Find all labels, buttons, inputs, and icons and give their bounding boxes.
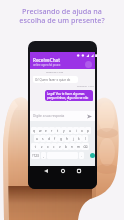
button[interactable]: f <box>52 135 58 142</box>
button[interactable]: a <box>34 135 40 142</box>
button[interactable]: , <box>41 152 46 159</box>
staticText: e <box>45 129 47 133</box>
button[interactable]: ?123 <box>31 152 40 159</box>
staticText: d <box>48 137 50 141</box>
staticText: s <box>42 137 44 141</box>
button[interactable]: o <box>79 127 85 134</box>
staticText: ⇧ <box>34 145 37 149</box>
button[interactable]: u <box>67 127 73 134</box>
button[interactable]: Enter <box>90 153 95 158</box>
staticText: v <box>59 145 61 149</box>
staticText: g <box>60 137 62 141</box>
staticText: k <box>78 137 80 141</box>
button[interactable]: q <box>31 127 37 134</box>
staticText: c <box>53 145 55 149</box>
staticText: z <box>41 145 43 149</box>
button[interactable]: m <box>75 143 81 150</box>
button[interactable]: b <box>63 143 69 150</box>
staticText: x <box>47 145 49 149</box>
button[interactable]: e <box>43 127 49 134</box>
staticText: q <box>33 129 35 133</box>
button[interactable]: h <box>64 135 70 142</box>
button[interactable]: Profile <box>85 61 92 68</box>
button[interactable]: Home <box>58 166 68 176</box>
button[interactable]: j <box>70 135 76 142</box>
staticText: p <box>87 129 89 133</box>
button[interactable]: Recents <box>74 166 84 176</box>
button[interactable]: c <box>51 143 57 150</box>
button[interactable]: ⌫ <box>81 143 89 150</box>
button[interactable]: k <box>76 135 82 142</box>
staticText: ontem às 14:20 <box>46 70 64 73</box>
staticText: Digite a sua resposta <box>33 114 65 118</box>
staticText: ReceiveChat <box>33 57 60 63</box>
staticText: n <box>71 145 73 149</box>
button[interactable]: r <box>49 127 55 134</box>
staticText: Legal! Vou te fazer algumas perguntinhas… <box>47 92 93 101</box>
staticText: m <box>77 145 80 149</box>
staticText: w <box>39 129 42 133</box>
button[interactable]: z <box>39 143 45 150</box>
staticText: ⌫ <box>83 145 88 149</box>
button[interactable]: Oi! Quero fazer o quizz do presente <box>33 76 78 83</box>
staticText: b <box>65 145 67 149</box>
staticText: ?123 <box>32 154 39 158</box>
button[interactable]: n <box>69 143 75 150</box>
button[interactable]: Legal! Vou te fazer algumas perguntinhas… <box>45 90 93 101</box>
staticText: Precisando de ajuda na escolha de um pre… <box>19 6 105 25</box>
button[interactable]: g <box>58 135 64 142</box>
button[interactable]: x <box>45 143 51 150</box>
button[interactable]: t <box>55 127 61 134</box>
staticText: h <box>66 137 68 141</box>
staticText: . <box>81 154 82 158</box>
staticText: Oi! Quero fazer o quizz do presente <box>35 78 78 83</box>
staticText: i <box>76 129 77 133</box>
button[interactable]: Back <box>41 166 51 176</box>
button[interactable]: s <box>40 135 46 142</box>
button[interactable]: i <box>73 127 79 134</box>
button[interactable]: y <box>61 127 67 134</box>
button[interactable]: . <box>79 152 84 159</box>
button[interactable]: Send <box>87 114 92 119</box>
button[interactable]: w <box>37 127 43 134</box>
staticText: l <box>85 137 86 141</box>
staticText: online agora há pouco <box>33 63 61 67</box>
button[interactable]: ⇧ <box>31 143 39 150</box>
staticText: r <box>51 129 53 133</box>
staticText: t <box>57 129 59 133</box>
button[interactable]: v <box>57 143 63 150</box>
staticText: , <box>43 154 44 158</box>
button[interactable]: d <box>46 135 52 142</box>
button[interactable]: p <box>85 127 91 134</box>
staticText: j <box>73 137 74 141</box>
staticText: o <box>81 129 83 133</box>
staticText: entregue 14:21 <box>77 85 94 88</box>
button[interactable]: l <box>82 135 88 142</box>
staticText: f <box>54 137 56 141</box>
staticText: y <box>63 129 65 133</box>
staticText: a <box>36 137 38 141</box>
staticText: u <box>69 129 71 133</box>
